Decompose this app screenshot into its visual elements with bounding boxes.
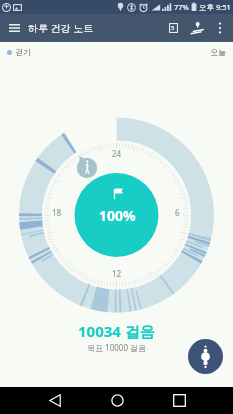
staticText: 하루 건강 노트 (28, 21, 94, 35)
staticText: 오늘 (210, 47, 226, 57)
staticText: 5 (171, 24, 175, 32)
staticText: 목표 10000 걸음 (87, 342, 147, 353)
button[interactable]: 오늘 (210, 45, 226, 59)
staticText: 오후 9:51 (199, 2, 231, 12)
button[interactable]: Home (104, 387, 130, 414)
staticText: 12 (112, 268, 122, 279)
staticText: 18 (52, 207, 62, 218)
button[interactable]: Recents (166, 387, 192, 414)
button[interactable]: More actions (188, 339, 223, 374)
button[interactable]: Route (185, 16, 209, 40)
staticText: 77% (174, 2, 189, 12)
button[interactable]: Back (42, 387, 68, 414)
staticText: 24 (112, 148, 122, 159)
staticText: 6 (175, 207, 180, 218)
button[interactable]: 걷기 (7, 45, 31, 59)
staticText: 걷기 (15, 47, 31, 57)
staticText: 10034 걸음 (78, 321, 155, 341)
staticText: 100% (99, 206, 136, 225)
button[interactable]: Calendar (161, 16, 185, 40)
button[interactable]: Menu (0, 14, 28, 42)
button[interactable]: More options (209, 17, 231, 39)
